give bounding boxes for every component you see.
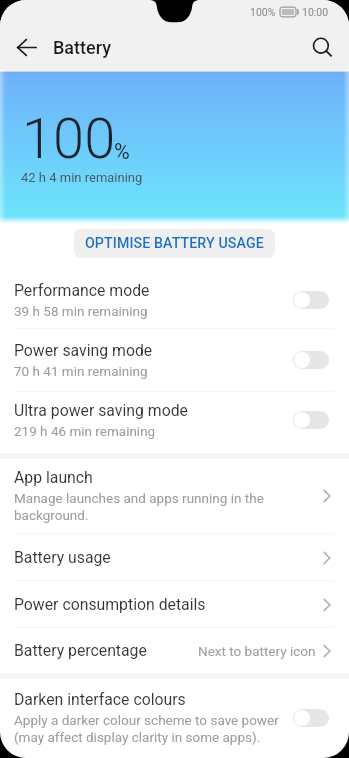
staticText: OPTIMISE BATTERY USAGE xyxy=(85,235,264,252)
staticText: Power saving mode xyxy=(14,341,153,360)
button[interactable]: Toggle off xyxy=(293,291,329,309)
staticText: Next to battery icon xyxy=(198,643,316,659)
button[interactable]: Back xyxy=(0,26,53,69)
staticText: Power consumption details xyxy=(14,595,206,614)
staticText: Battery xyxy=(53,37,112,58)
staticText: 70 h 41 min remaining xyxy=(14,363,148,379)
button[interactable]: OPTIMISE BATTERY USAGE xyxy=(74,229,275,258)
button[interactable]: Toggle off xyxy=(293,411,329,429)
button[interactable]: Battery percentage xyxy=(0,628,349,673)
button[interactable]: Toggle off xyxy=(293,709,329,727)
staticText: 39 h 58 min remaining xyxy=(14,303,148,319)
staticText: 219 h 46 min remaining xyxy=(14,423,156,439)
button[interactable]: Power consumption details xyxy=(0,581,349,628)
staticText: 10:00 xyxy=(302,6,329,18)
button[interactable]: Darken interface colours xyxy=(0,679,349,758)
staticText: Manage launches and apps running in the … xyxy=(14,490,264,523)
button[interactable]: Performance mode xyxy=(0,266,349,329)
staticText: Ultra power saving mode xyxy=(14,401,188,420)
staticText: % xyxy=(114,139,130,164)
staticText: Performance mode xyxy=(14,281,150,300)
staticText: App launch xyxy=(14,468,93,487)
staticText: 100 xyxy=(22,106,116,172)
button[interactable]: Toggle off xyxy=(293,351,329,369)
staticText: 42 h 4 min remaining xyxy=(21,170,143,185)
button[interactable]: Power saving mode xyxy=(0,329,349,392)
button[interactable]: Search xyxy=(296,26,349,69)
button[interactable]: Ultra power saving mode xyxy=(0,392,349,453)
button[interactable]: Battery usage xyxy=(0,534,349,581)
staticText: Apply a darker colour scheme to save pow… xyxy=(14,712,279,745)
staticText: Darken interface colours xyxy=(14,690,186,709)
staticText: Battery percentage xyxy=(14,641,147,660)
button[interactable]: App launch xyxy=(0,459,349,534)
staticText: Battery usage xyxy=(14,548,111,567)
staticText: 100% xyxy=(250,6,276,18)
